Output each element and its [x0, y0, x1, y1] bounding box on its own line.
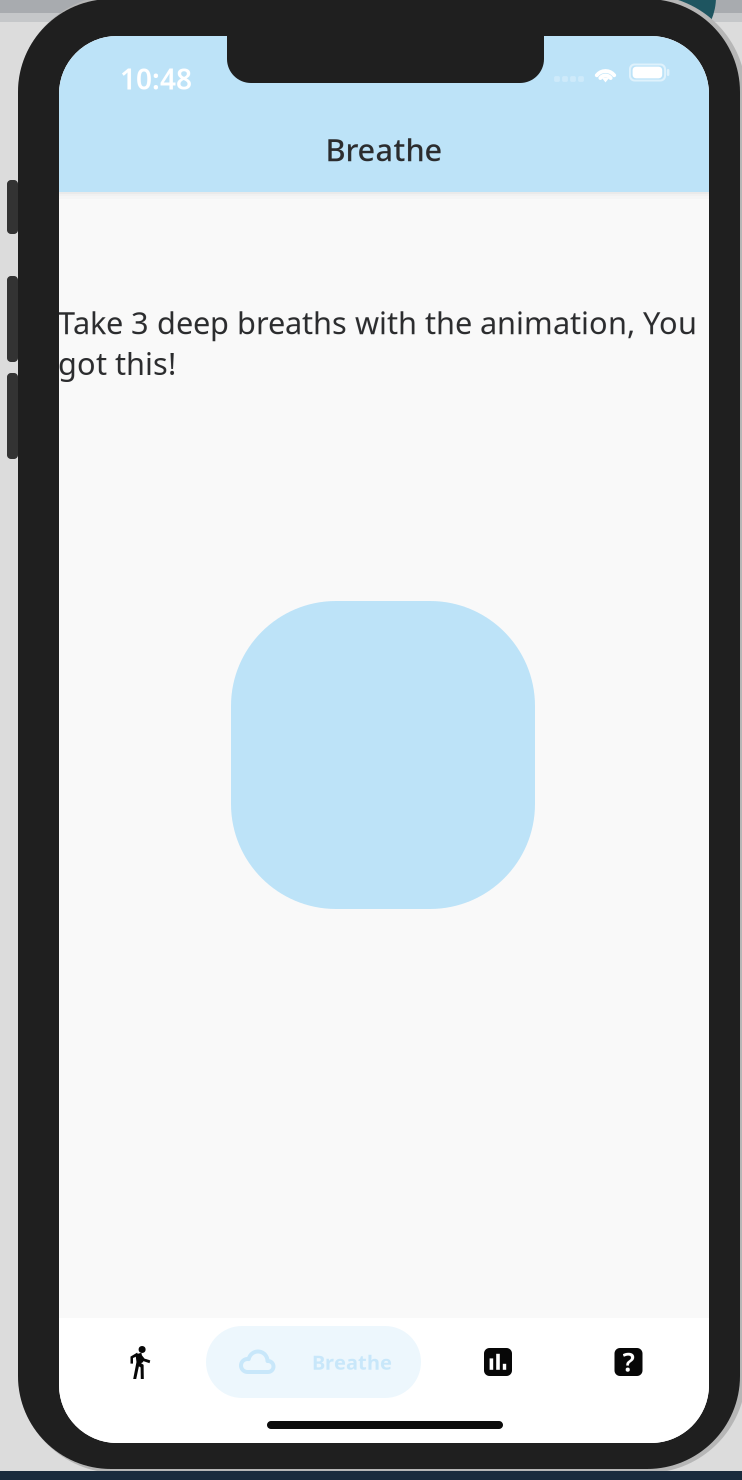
staticText: Breathe — [325, 129, 442, 170]
button[interactable]: Stats — [453, 1324, 543, 1400]
staticText: Take 3 deep breaths with the animation, … — [58, 302, 697, 383]
staticText: 10:48 — [120, 60, 192, 97]
button[interactable]: Breathe — [206, 1326, 421, 1398]
button[interactable]: Help — [583, 1324, 673, 1400]
staticText: Breathe — [312, 1349, 392, 1375]
button[interactable]: Move — [95, 1325, 185, 1401]
staticText: ? — [622, 1344, 634, 1379]
